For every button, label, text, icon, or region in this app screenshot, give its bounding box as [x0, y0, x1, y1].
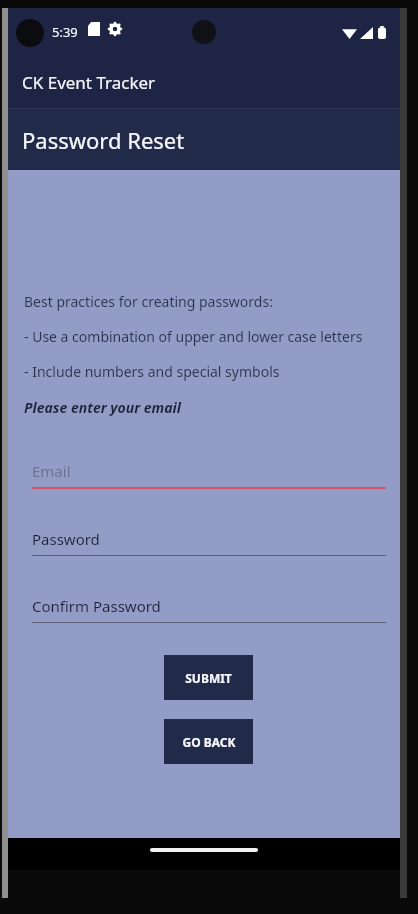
button[interactable]: Password	[32, 529, 386, 556]
staticText: - Include numbers and special symbols	[24, 362, 280, 381]
staticText: GO BACK	[182, 734, 236, 750]
button[interactable]: GO BACK	[164, 719, 253, 764]
staticText: CK Event Tracker	[22, 71, 156, 94]
staticText: Please enter your email	[24, 398, 181, 417]
button[interactable]: Email	[32, 461, 386, 489]
button[interactable]: SUBMIT	[164, 655, 253, 700]
staticText: Password Reset	[22, 125, 185, 155]
staticText: SUBMIT	[185, 670, 232, 686]
staticText: - Use a combination of upper and lower c…	[24, 327, 363, 346]
staticText: Password	[32, 529, 100, 549]
button[interactable]: CK Event Tracker	[8, 56, 400, 108]
staticText: 5:39	[52, 23, 78, 41]
staticText: Confirm Password	[32, 596, 161, 616]
staticText: Email	[32, 461, 71, 481]
button[interactable]: Confirm Password	[32, 596, 386, 623]
staticText: Best practices for creating passwords:	[24, 292, 273, 311]
